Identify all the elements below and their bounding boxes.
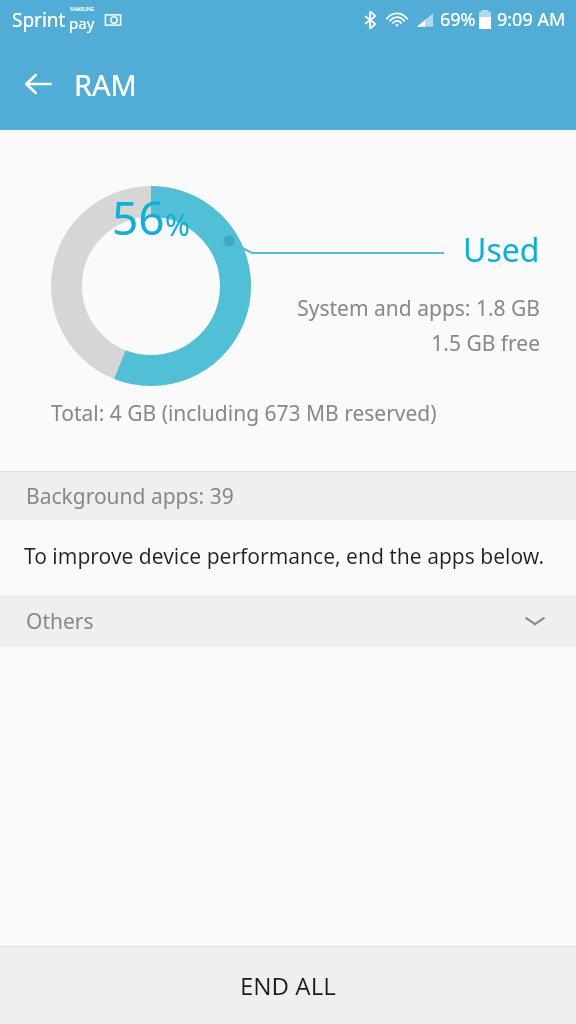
- staticText: Sprint: [12, 7, 66, 33]
- staticText: 1.5 GB free: [431, 329, 540, 358]
- staticText: SAMSUNG: [70, 6, 95, 13]
- staticText: Background apps: 39: [26, 482, 234, 511]
- staticText: 56: [112, 186, 165, 249]
- staticText: Others: [26, 607, 94, 636]
- button[interactable]: Others: [0, 595, 576, 647]
- staticText: END ALL: [240, 969, 336, 1002]
- staticText: System and apps: 1.8 GB: [297, 294, 540, 323]
- staticText: Total: 4 GB (including 673 MB reserved): [51, 399, 437, 428]
- staticText: 69%: [440, 7, 476, 32]
- staticText: To improve device performance, end the a…: [24, 542, 545, 571]
- staticText: Used: [463, 228, 540, 272]
- staticText: %: [165, 204, 190, 245]
- staticText: 9:09 AM: [497, 7, 566, 32]
- button[interactable]: Back: [14, 60, 62, 108]
- staticText: RAM: [74, 65, 137, 104]
- button[interactable]: END ALL: [0, 947, 576, 1024]
- staticText: pay: [69, 13, 95, 33]
